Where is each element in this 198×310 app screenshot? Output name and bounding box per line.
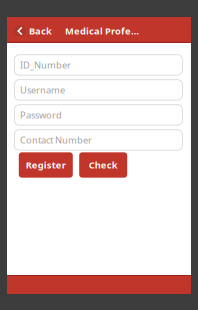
staticText: Medical Profe… [65, 25, 139, 37]
button[interactable]: Register [19, 152, 73, 178]
button[interactable]: Check [79, 152, 127, 178]
staticText: Username [20, 84, 65, 96]
staticText: ID_Number [20, 59, 71, 71]
button[interactable]: Back [7, 17, 57, 43]
staticText: Password [20, 109, 62, 121]
staticText: Check [89, 159, 118, 171]
staticText: Back [29, 25, 52, 37]
staticText: Register [26, 159, 66, 171]
staticText: Contact Number [20, 134, 92, 146]
